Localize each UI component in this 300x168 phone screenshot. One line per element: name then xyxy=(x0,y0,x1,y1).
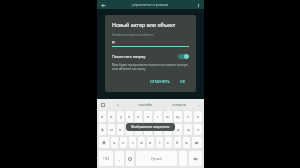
staticText: спасибо xyxy=(138,102,153,107)
staticText: Вам будет предложено поместить нового ак… xyxy=(112,63,189,71)
staticText: ь xyxy=(167,140,170,145)
button[interactable]: ОТМЕНИТЬ xyxy=(147,77,173,86)
staticText: о xyxy=(157,127,160,132)
staticText: щ xyxy=(176,114,180,119)
button[interactable]: а xyxy=(126,124,133,135)
button[interactable]: в xyxy=(117,124,124,135)
button[interactable]: Русский xyxy=(136,151,177,166)
staticText: , xyxy=(119,156,121,161)
button[interactable]: ш xyxy=(164,111,172,122)
button[interactable]: ы xyxy=(108,124,115,135)
staticText: я xyxy=(113,140,116,145)
button[interactable]: ю xyxy=(183,137,190,148)
staticText: Новый актер или объект xyxy=(112,21,176,28)
button[interactable]: д xyxy=(174,124,182,135)
button[interactable]: е xyxy=(135,111,142,122)
staticText: и xyxy=(149,140,152,145)
staticText: р xyxy=(147,127,150,132)
staticText: с xyxy=(117,102,119,107)
button[interactable]: щ xyxy=(174,111,182,122)
staticText: й xyxy=(101,114,104,119)
staticText: д xyxy=(112,39,115,45)
button[interactable]: Back xyxy=(99,1,107,9)
staticText: ОК xyxy=(180,79,186,84)
button[interactable]: х xyxy=(194,111,202,122)
button[interactable]: б xyxy=(174,137,181,148)
button[interactable]: Keyboard settings xyxy=(100,102,106,108)
staticText: м xyxy=(140,140,143,145)
button[interactable]: Shift xyxy=(99,137,109,148)
staticText: ⌄ xyxy=(197,103,200,107)
button[interactable]: Enter xyxy=(189,151,202,166)
staticText: э xyxy=(197,127,199,132)
staticText: д xyxy=(177,127,180,132)
staticText: ?123 xyxy=(103,157,110,161)
button[interactable]: к xyxy=(126,111,133,122)
button[interactable]: спасибо xyxy=(129,102,162,107)
staticText: ОТМЕНИТЬ xyxy=(150,79,170,84)
button[interactable]: ?123 xyxy=(99,151,113,166)
staticText: ц xyxy=(110,114,113,119)
button[interactable]: с xyxy=(106,102,129,107)
button[interactable]: д xyxy=(112,39,189,47)
button[interactable]: ф xyxy=(99,124,106,135)
button[interactable]: сегодня xyxy=(162,102,195,107)
button[interactable]: л xyxy=(164,124,172,135)
button[interactable]: м xyxy=(138,137,145,148)
button[interactable]: More suggestions xyxy=(195,102,201,108)
staticText: в xyxy=(119,127,122,132)
staticText: к xyxy=(128,114,131,119)
staticText: е xyxy=(137,114,140,119)
button[interactable]: ц xyxy=(108,111,115,122)
staticText: ф xyxy=(101,127,104,132)
button[interactable]: ОК xyxy=(177,77,189,86)
staticText: г xyxy=(157,114,159,119)
button[interactable]: й xyxy=(99,111,106,122)
button[interactable]: и xyxy=(147,137,154,148)
staticText: а xyxy=(128,127,131,132)
staticText: х xyxy=(197,114,199,119)
button[interactable]: т xyxy=(156,137,163,148)
button[interactable]: г xyxy=(154,111,162,122)
button[interactable]: Backspace xyxy=(192,137,202,148)
staticText: Изображение сохранено xyxy=(131,125,170,129)
button[interactable]: , xyxy=(115,151,124,166)
button[interactable]: э xyxy=(194,124,202,135)
staticText: л xyxy=(167,127,170,132)
staticText: Название актера или объекта xyxy=(112,33,154,37)
button[interactable]: с xyxy=(129,137,136,148)
staticText: з xyxy=(187,114,189,119)
staticText: с xyxy=(132,140,134,145)
button[interactable]: Поместить вверху xyxy=(112,54,189,59)
staticText: сегодня xyxy=(172,102,186,107)
button[interactable]: More options xyxy=(194,1,202,9)
button[interactable]: ж xyxy=(184,124,192,135)
staticText: ч xyxy=(122,140,125,145)
staticText: Русский xyxy=(151,157,162,161)
button[interactable]: ь xyxy=(165,137,172,148)
staticText: . xyxy=(182,156,184,161)
button[interactable]: з xyxy=(184,111,192,122)
staticText: управление строками xyxy=(132,2,169,7)
staticText: п xyxy=(137,127,140,132)
staticText: н xyxy=(147,114,150,119)
staticText: б xyxy=(176,140,179,145)
button[interactable]: н xyxy=(144,111,152,122)
button[interactable]: р xyxy=(144,124,152,135)
button[interactable]: у xyxy=(117,111,124,122)
button[interactable]: Emoji xyxy=(126,151,134,166)
staticText: т xyxy=(159,140,161,145)
button[interactable]: о xyxy=(154,124,162,135)
button[interactable]: я xyxy=(111,137,118,148)
staticText: ш xyxy=(166,114,170,119)
button[interactable]: ч xyxy=(120,137,127,148)
staticText: ы xyxy=(110,127,113,132)
staticText: Поместить вверху xyxy=(112,54,178,59)
staticText: ж xyxy=(187,127,190,132)
staticText: ю xyxy=(185,140,189,145)
button[interactable]: п xyxy=(135,124,142,135)
staticText: у xyxy=(120,114,122,119)
